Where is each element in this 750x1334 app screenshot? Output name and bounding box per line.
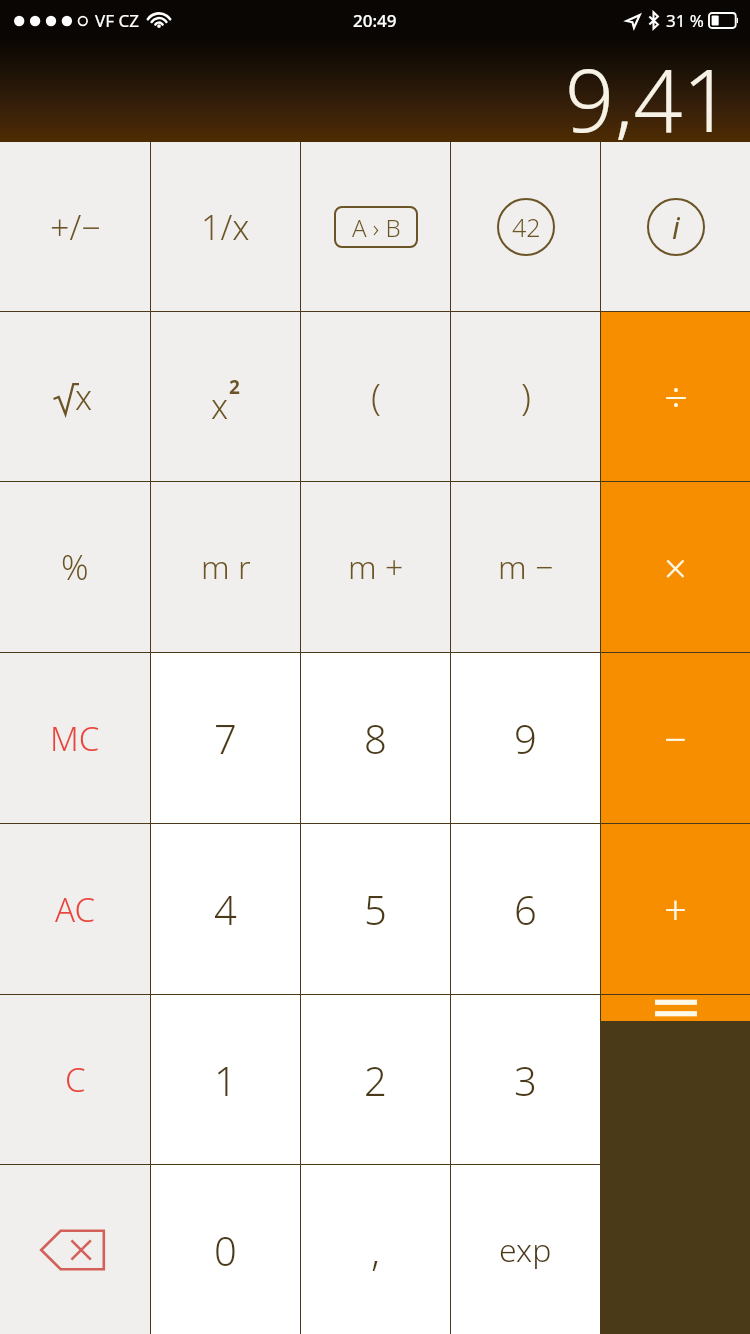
staticText: MC <box>50 716 100 761</box>
staticText: m r <box>201 545 251 589</box>
staticText: C <box>65 1057 86 1102</box>
button[interactable]: 7 <box>151 653 300 823</box>
staticText: x <box>211 383 229 429</box>
staticText: 31 % <box>666 9 704 32</box>
button[interactable]: 8 <box>301 653 450 823</box>
button[interactable]: x squared <box>151 312 300 481</box>
staticText: m + <box>348 545 404 589</box>
button[interactable]: % <box>0 482 150 652</box>
staticText: 2 <box>364 1053 387 1107</box>
button[interactable]: exp <box>451 1165 600 1334</box>
staticText: 6 <box>514 882 537 936</box>
button[interactable]: ( <box>301 312 450 481</box>
staticText: ÷ <box>664 368 688 425</box>
staticText: ( <box>371 372 381 421</box>
button[interactable]: Equals <box>601 995 750 1021</box>
button[interactable]: + <box>601 824 750 994</box>
staticText: x <box>75 374 93 420</box>
button[interactable]: ÷ <box>601 312 750 481</box>
staticText: × <box>664 540 687 594</box>
button[interactable]: 9 <box>451 653 600 823</box>
staticText: m − <box>498 545 554 589</box>
staticText: 8 <box>364 711 387 765</box>
button[interactable]: 0 <box>151 1165 300 1334</box>
staticText: 7 <box>214 711 237 765</box>
staticText: , <box>371 1223 380 1277</box>
button[interactable]: 42 <box>451 142 600 311</box>
button[interactable]: − <box>601 653 750 823</box>
staticText: 4 <box>214 882 237 936</box>
staticText: 3 <box>514 1053 537 1107</box>
staticText: 0 <box>214 1223 237 1277</box>
button[interactable]: 5 <box>301 824 450 994</box>
staticText: 1 <box>214 1053 237 1107</box>
button[interactable]: m + <box>301 482 450 652</box>
button[interactable]: Square root <box>0 312 150 481</box>
button[interactable]: 1 <box>151 995 300 1164</box>
button[interactable]: 2 <box>301 995 450 1164</box>
staticText: − <box>664 711 687 765</box>
button[interactable]: m − <box>451 482 600 652</box>
button[interactable]: A to B <box>301 142 450 311</box>
staticText: i <box>672 207 680 248</box>
staticText: ) <box>521 372 531 421</box>
staticText: AC <box>55 887 95 932</box>
staticText: 1/x <box>201 204 250 250</box>
staticText: + <box>664 882 687 936</box>
staticText: VF CZ <box>95 9 139 32</box>
button[interactable]: C <box>0 995 150 1164</box>
staticText: 9 <box>514 711 537 765</box>
staticText: % <box>61 544 89 590</box>
button[interactable]: ) <box>451 312 600 481</box>
button[interactable]: 3 <box>451 995 600 1164</box>
button[interactable]: Backspace <box>0 1165 150 1334</box>
staticText: +/− <box>50 204 101 250</box>
button[interactable]: 4 <box>151 824 300 994</box>
button[interactable]: m r <box>151 482 300 652</box>
staticText: 9,41 <box>565 40 732 140</box>
button[interactable]: 6 <box>451 824 600 994</box>
staticText: 2 <box>229 374 240 400</box>
staticText: exp <box>499 1228 552 1272</box>
button[interactable]: × <box>601 482 750 652</box>
button[interactable]: AC <box>0 824 150 994</box>
staticText: A › B <box>352 211 401 244</box>
button[interactable]: Info <box>601 142 750 311</box>
button[interactable]: , <box>301 1165 450 1334</box>
button[interactable]: MC <box>0 653 150 823</box>
button[interactable]: 1/x <box>151 142 300 311</box>
staticText: 20:49 <box>353 9 397 32</box>
button[interactable]: +/− <box>0 142 150 311</box>
staticText: 5 <box>364 882 387 936</box>
staticText: 42 <box>512 210 541 244</box>
